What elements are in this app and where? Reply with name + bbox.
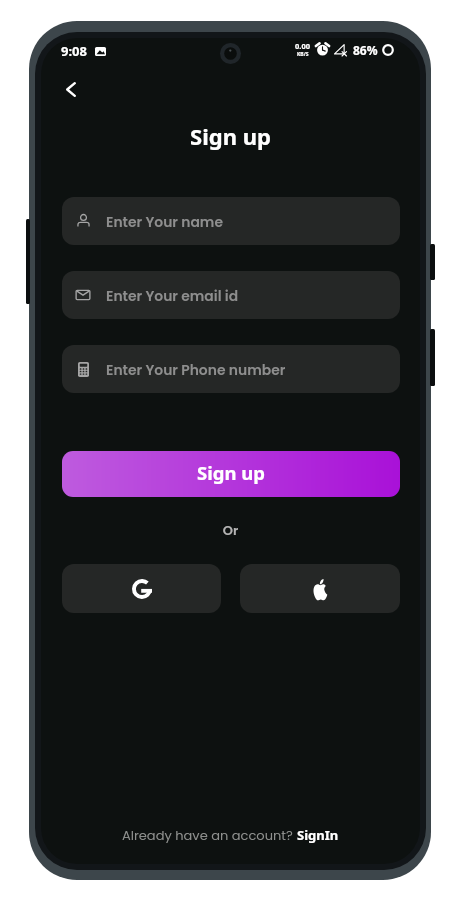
staticText: Sign up bbox=[197, 460, 265, 485]
button[interactable]: Already have an account? bbox=[35, 826, 426, 844]
staticText: Enter Your email id bbox=[106, 286, 239, 305]
button[interactable]: Enter Your email id bbox=[62, 271, 400, 319]
staticText: 9:08 bbox=[61, 42, 87, 60]
button[interactable]: Sign up with Google bbox=[62, 564, 221, 613]
staticText: Sign up bbox=[35, 121, 426, 151]
button[interactable]: Sign up bbox=[62, 451, 400, 497]
staticText: 0.00 bbox=[295, 41, 310, 51]
staticText: SignIn bbox=[297, 826, 339, 844]
staticText: Or bbox=[35, 521, 426, 539]
staticText: 86% bbox=[353, 42, 378, 58]
staticText: Enter Your Phone number bbox=[106, 360, 286, 379]
staticText: KB/S bbox=[297, 51, 309, 58]
button[interactable]: Enter Your name bbox=[62, 197, 400, 245]
button[interactable]: Enter Your Phone number bbox=[62, 345, 400, 393]
staticText: Enter Your name bbox=[106, 212, 223, 231]
button[interactable]: Back bbox=[50, 68, 92, 110]
staticText: Already have an account? bbox=[122, 826, 297, 844]
button[interactable]: Sign up with Apple bbox=[240, 564, 400, 613]
